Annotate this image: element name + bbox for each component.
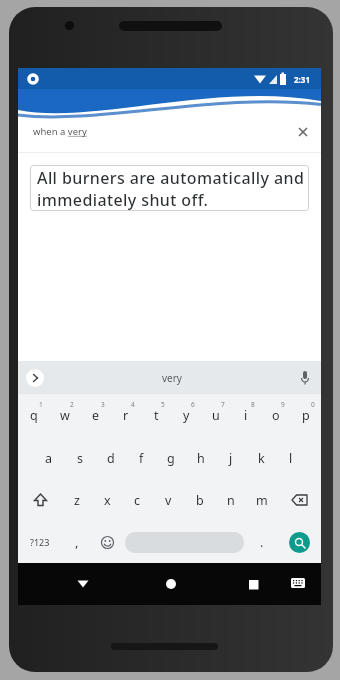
staticText: 2:31 [294,74,310,85]
button[interactable] [70,571,96,597]
staticText: o [272,407,280,424]
button[interactable] [18,479,62,521]
staticText: w [60,407,70,424]
button[interactable]: v [153,479,184,521]
button[interactable]: n [215,479,246,521]
button[interactable]: z [62,479,92,521]
staticText: y [183,407,190,424]
staticText: v [165,492,172,509]
staticText: e [92,407,100,424]
staticText: i [244,407,248,424]
staticText: r [123,407,129,424]
staticText: 0 [311,400,315,409]
button[interactable]: g [156,437,186,479]
staticText: k [258,450,265,467]
button[interactable]: q [18,394,49,437]
staticText: a [45,450,53,467]
button[interactable]: All burners are automatically and immedi… [30,165,309,211]
staticText: 5 [161,400,165,409]
staticText: m [256,492,268,509]
staticText: 7 [221,400,225,409]
staticText: All burners are automatically and immedi… [37,167,305,211]
staticText: z [74,492,80,509]
staticText: very [162,371,182,385]
button[interactable]: , [62,521,92,563]
button[interactable]: e [80,394,111,437]
staticText: g [167,450,175,467]
button[interactable] [277,479,321,521]
button[interactable]: a [33,437,64,479]
button[interactable]: k [246,437,276,479]
button[interactable] [26,369,44,387]
staticText: d [107,450,115,467]
staticText: j [229,450,233,467]
button[interactable] [240,571,266,597]
button[interactable]: . [247,521,277,563]
button[interactable] [122,521,247,563]
button[interactable] [92,521,122,563]
button[interactable]: o [261,394,291,437]
staticText: b [196,492,204,509]
staticText: ?123 [30,536,50,548]
staticText: t [154,407,159,424]
button[interactable]: m [246,479,277,521]
button[interactable]: p [291,394,321,437]
staticText: x [104,492,111,509]
staticText: l [289,450,293,467]
staticText: 1 [39,400,43,409]
button[interactable] [298,127,308,137]
staticText: s [77,450,83,467]
button[interactable]: d [95,437,126,479]
staticText: p [302,407,310,424]
staticText: when a very [33,125,87,138]
staticText: q [30,407,38,424]
button[interactable]: w [49,394,80,437]
staticText: 6 [191,400,195,409]
staticText: f [139,450,144,467]
button[interactable] [158,571,184,597]
button[interactable]: b [184,479,215,521]
staticText: h [197,450,205,467]
staticText: u [212,407,220,424]
button[interactable]: h [186,437,216,479]
button[interactable] [286,573,310,593]
button[interactable]: ?123 [18,521,62,563]
staticText: 2 [70,400,74,409]
button[interactable]: u [201,394,231,437]
button[interactable]: x [92,479,122,521]
button[interactable] [299,370,311,386]
staticText: 8 [251,400,255,409]
button[interactable] [277,521,321,563]
staticText: , [75,534,79,551]
button[interactable]: f [126,437,156,479]
button[interactable]: y [171,394,201,437]
staticText: . [260,534,264,551]
button[interactable]: j [216,437,246,479]
staticText: n [227,492,235,509]
staticText: 9 [281,400,285,409]
button[interactable]: r [111,394,141,437]
button[interactable]: t [141,394,171,437]
button[interactable]: s [64,437,95,479]
button[interactable]: i [231,394,261,437]
staticText: 3 [101,400,105,409]
staticText: c [134,492,141,509]
staticText: 4 [131,400,135,409]
button[interactable]: c [122,479,153,521]
button[interactable]: l [276,437,306,479]
